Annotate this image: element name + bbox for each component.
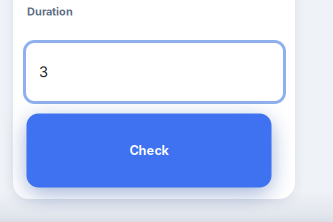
staticText: Check [129,143,168,158]
staticText: 3 [39,63,48,81]
button[interactable]: Check [26,113,271,187]
staticText: Duration [27,5,73,18]
button[interactable]: 3 [24,41,284,102]
